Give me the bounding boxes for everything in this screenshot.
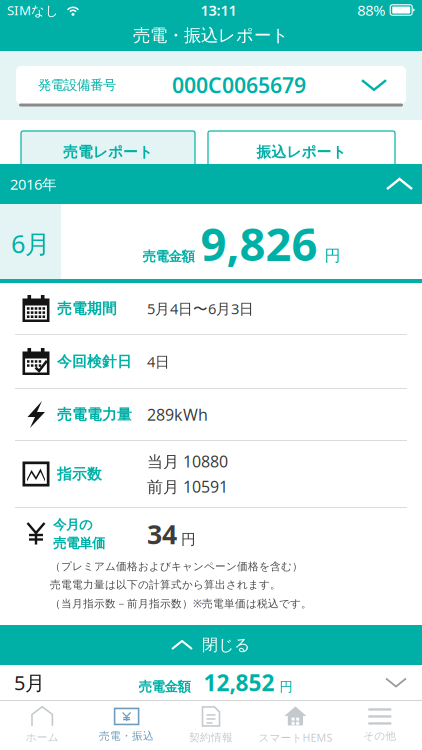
button[interactable]: 売電レポート [21,120,195,173]
staticText: 5月4日〜6月3日 [147,299,254,318]
staticText: 契約情報 [189,731,233,744]
staticText: 13:11 [201,0,237,20]
staticText: 売電電力量は以下の計算式から算出されます。 [50,578,281,591]
staticText: 000C0065679 [172,71,306,99]
staticText: 発電設備番号 [38,77,116,93]
staticText: （プレミアム価格およびキャンペーン価格を含む） [50,560,303,573]
staticText: （当月指示数－前月指示数）※売電単価は税込です。 [50,596,312,610]
staticText: 2016年 [10,174,57,194]
button[interactable]: 売電・振込 [84,700,169,750]
staticText: 34 [147,516,177,552]
button[interactable]: 閉じる [0,625,422,665]
staticText: 円 [181,530,196,548]
button[interactable]: 5月 [0,665,422,700]
staticText: 売電金額 [138,679,190,695]
staticText: 5月 [14,669,45,696]
staticText: 今月の [53,517,93,533]
staticText: 閉じる [202,635,250,655]
staticText: 売電レポート [63,143,153,161]
staticText: 売電・振込レポート [133,25,289,46]
button[interactable]: 振込レポート [208,120,395,173]
staticText: 指示数 [57,465,102,483]
staticText: ホーム [26,731,59,744]
button[interactable]: 契約情報 [169,700,253,750]
staticText: 売電単価 [53,535,105,551]
staticText: 円 [324,246,340,266]
button[interactable]: 発電設備番号 [16,66,406,104]
staticText: 今回検針日 [57,352,132,370]
staticText: その他 [363,729,396,742]
staticText: 289kWh [147,404,208,425]
button[interactable]: 2016年 [0,164,422,204]
staticText: 売電期間 [57,299,117,317]
staticText: 12,852 [203,667,274,697]
staticText: 88% [357,0,385,20]
staticText: SIMなし [7,1,59,19]
staticText: 4日 [147,352,170,371]
staticText: スマートHEMS [258,730,332,745]
staticText: 当月 10880 [147,451,228,472]
staticText: 売電・振込 [99,729,154,742]
staticText: 9,826 [200,213,317,274]
button[interactable]: その他 [338,700,422,750]
staticText: 円 [279,679,292,695]
staticText: 売電電力量 [57,405,132,423]
staticText: 前月 10591 [147,476,228,497]
staticText: 6月 [11,227,50,260]
button[interactable]: スマートHEMS [253,700,338,750]
button[interactable]: ホーム [0,700,84,750]
staticText: 売電金額 [142,248,194,265]
staticText: 振込レポート [256,143,346,161]
